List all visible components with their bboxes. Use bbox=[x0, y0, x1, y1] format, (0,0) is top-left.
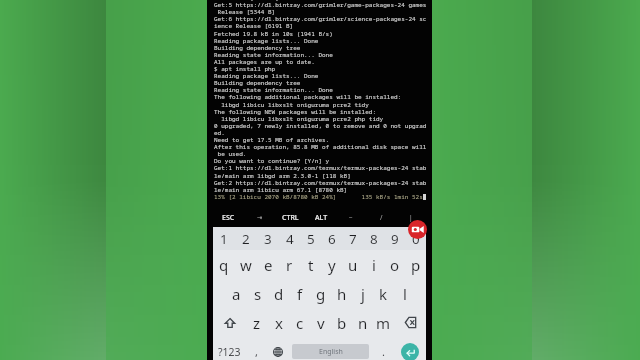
staticText: $ apt install php bbox=[214, 65, 276, 73]
button[interactable]: 1 bbox=[213, 227, 235, 250]
button[interactable]: − bbox=[336, 208, 366, 227]
staticText: Reading package lists... Done bbox=[214, 72, 319, 80]
button[interactable]: q bbox=[213, 250, 235, 279]
button[interactable]: 8 bbox=[363, 227, 384, 250]
button[interactable]: t bbox=[300, 250, 321, 279]
staticText: Reading package lists... Done bbox=[214, 37, 319, 45]
button[interactable]: m bbox=[373, 308, 394, 337]
staticText: ALT bbox=[315, 213, 328, 223]
button[interactable]: 6 bbox=[321, 227, 342, 250]
staticText: 3 bbox=[264, 230, 272, 248]
staticText: − bbox=[349, 213, 353, 222]
button[interactable]: , bbox=[246, 337, 267, 360]
button[interactable]: i bbox=[363, 250, 384, 279]
button[interactable]: z bbox=[246, 308, 268, 337]
button[interactable]: a bbox=[225, 279, 247, 308]
button[interactable]: Change keyboard language bbox=[267, 337, 288, 360]
button[interactable]: English bbox=[292, 344, 369, 359]
button[interactable]: b bbox=[331, 308, 352, 337]
staticText: Reading state information... Done bbox=[214, 51, 333, 59]
staticText: The following NEW packages will be insta… bbox=[214, 108, 377, 116]
button[interactable]: ALT bbox=[306, 208, 336, 227]
button[interactable]: p bbox=[405, 250, 426, 279]
button[interactable]: 0 bbox=[405, 227, 426, 250]
staticText: 7 bbox=[349, 230, 357, 248]
button[interactable]: 4 bbox=[279, 227, 300, 250]
button[interactable]: ?123 bbox=[213, 337, 246, 360]
staticText: Do you want to continue? [Y/n] y bbox=[214, 157, 330, 165]
staticText: 8 bbox=[370, 230, 378, 248]
staticText: 13% [2 libicu 2070 kB/8780 kB 24%] 135 k… bbox=[214, 193, 423, 201]
staticText: ience Release [6191 B] bbox=[214, 22, 294, 30]
staticText: u bbox=[348, 255, 358, 275]
staticText: CTRL bbox=[282, 213, 299, 223]
button[interactable]: . bbox=[373, 337, 394, 360]
button[interactable]: y bbox=[321, 250, 342, 279]
staticText: After this operation, 85.8 MB of additio… bbox=[214, 143, 427, 151]
staticText: Release [5344 B] bbox=[214, 8, 276, 16]
staticText: Reading state information... Done bbox=[214, 86, 333, 94]
button[interactable]: u bbox=[342, 250, 363, 279]
button[interactable]: k bbox=[373, 279, 394, 308]
button[interactable]: h bbox=[331, 279, 352, 308]
staticText: 6 bbox=[328, 230, 336, 248]
staticText: j bbox=[361, 284, 365, 304]
staticText: f bbox=[297, 284, 303, 304]
staticText: d bbox=[274, 284, 284, 304]
staticText: The following additional packages will b… bbox=[214, 93, 402, 101]
button[interactable]: w bbox=[235, 250, 257, 279]
staticText: 0 bbox=[412, 230, 420, 248]
button[interactable]: | bbox=[396, 208, 426, 227]
button[interactable]: f bbox=[289, 279, 310, 308]
staticText: m bbox=[376, 313, 391, 333]
button[interactable]: l bbox=[394, 279, 415, 308]
button[interactable]: Enter bbox=[401, 343, 419, 360]
staticText: Need to get 17.5 MB of archives. bbox=[214, 136, 330, 144]
button[interactable]: d bbox=[268, 279, 289, 308]
button[interactable]: 2 bbox=[235, 227, 257, 250]
staticText: Get:1 https://dl.bintray.com/termux/term… bbox=[214, 164, 427, 172]
button[interactable]: 9 bbox=[384, 227, 405, 250]
button[interactable]: 5 bbox=[300, 227, 321, 250]
staticText: q bbox=[219, 255, 229, 275]
staticText: All packages are up to date. bbox=[214, 58, 315, 66]
staticText: n bbox=[358, 313, 368, 333]
staticText: z bbox=[253, 313, 261, 333]
button[interactable]: x bbox=[268, 308, 289, 337]
staticText: r bbox=[286, 255, 293, 275]
staticText: e bbox=[264, 255, 273, 275]
staticText: l bbox=[403, 284, 407, 304]
button[interactable]: Stop screen recording bbox=[408, 220, 427, 239]
button[interactable]: ⇥ bbox=[244, 208, 275, 227]
button[interactable]: 3 bbox=[257, 227, 279, 250]
button[interactable]: o bbox=[384, 250, 405, 279]
button[interactable]: / bbox=[366, 208, 396, 227]
button[interactable]: e bbox=[257, 250, 279, 279]
staticText: h bbox=[337, 284, 347, 304]
staticText: , bbox=[255, 344, 258, 359]
button[interactable]: r bbox=[279, 250, 300, 279]
button[interactable]: j bbox=[352, 279, 373, 308]
button[interactable]: n bbox=[352, 308, 373, 337]
button[interactable]: 7 bbox=[342, 227, 363, 250]
staticText: 9 bbox=[391, 230, 399, 248]
button[interactable]: s bbox=[247, 279, 268, 308]
button[interactable]: c bbox=[289, 308, 310, 337]
staticText: Get:2 https://dl.bintray.com/termux/term… bbox=[214, 179, 427, 187]
staticText: libgd libicu libxslt oniguruma pcre2 php… bbox=[214, 115, 384, 123]
button[interactable]: Backspace bbox=[394, 308, 426, 337]
staticText: Get:5 https://dl.bintray.com/grimler/gam… bbox=[214, 1, 427, 9]
staticText: w bbox=[240, 255, 252, 275]
button[interactable]: Shift bbox=[213, 308, 246, 337]
staticText: t bbox=[308, 255, 314, 275]
staticText: | bbox=[409, 213, 413, 222]
button[interactable]: CTRL bbox=[275, 208, 306, 227]
staticText: Building dependency tree bbox=[214, 44, 301, 52]
staticText: ESC bbox=[222, 213, 235, 223]
button[interactable]: ESC bbox=[213, 208, 244, 227]
staticText: y bbox=[328, 255, 336, 275]
button[interactable]: v bbox=[310, 308, 331, 337]
button[interactable]: g bbox=[310, 279, 331, 308]
staticText: x bbox=[275, 313, 283, 333]
staticText: b bbox=[337, 313, 347, 333]
